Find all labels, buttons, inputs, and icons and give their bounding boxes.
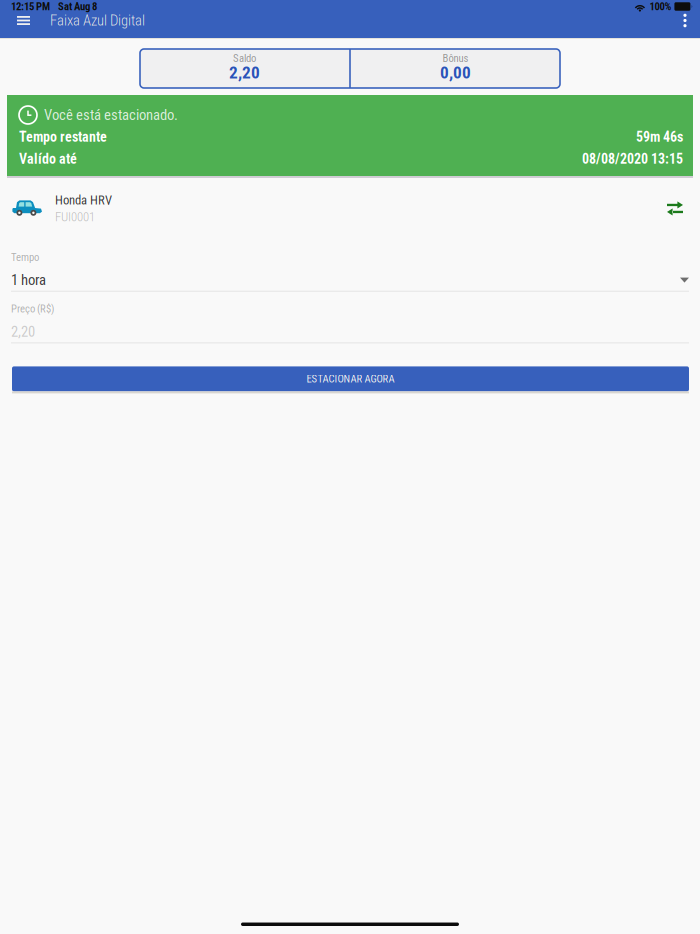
staticText: 0,00 xyxy=(440,62,471,83)
staticText: ESTACIONAR AGORA xyxy=(306,373,394,385)
staticText: Saldo xyxy=(233,52,256,64)
staticText: 08/08/2020 13:15 xyxy=(582,151,683,167)
staticText: Valído até xyxy=(19,151,77,167)
button[interactable]: Tempo xyxy=(11,251,689,292)
button[interactable]: More options xyxy=(674,9,696,31)
staticText: Bônus xyxy=(442,52,468,64)
button[interactable]: Saldo xyxy=(140,49,349,88)
button[interactable]: ESTACIONAR AGORA xyxy=(12,366,689,391)
button[interactable]: Menu xyxy=(9,9,38,31)
staticText: 2,20 xyxy=(229,62,260,83)
staticText: Preço (R$) xyxy=(11,303,54,315)
staticText: 12:15 PM xyxy=(11,0,50,13)
staticText: 59m 46s xyxy=(636,129,683,145)
staticText: 2,20 xyxy=(11,323,35,340)
button[interactable]: Honda HRV xyxy=(0,182,700,228)
staticText: Tempo restante xyxy=(19,129,107,145)
staticText: Faixa Azul Digital xyxy=(50,12,145,29)
staticText: 100% xyxy=(649,0,671,13)
staticText: Honda HRV xyxy=(55,193,112,207)
staticText: Tempo xyxy=(11,251,39,263)
staticText: FUI0001 xyxy=(55,209,95,224)
button[interactable]: Preço (R$) xyxy=(11,303,689,343)
staticText: Sat Aug 8 xyxy=(58,0,97,13)
staticText: 1 hora xyxy=(11,271,46,289)
button[interactable]: Bônus xyxy=(351,49,560,88)
staticText: Você está estacionado. xyxy=(44,106,178,124)
